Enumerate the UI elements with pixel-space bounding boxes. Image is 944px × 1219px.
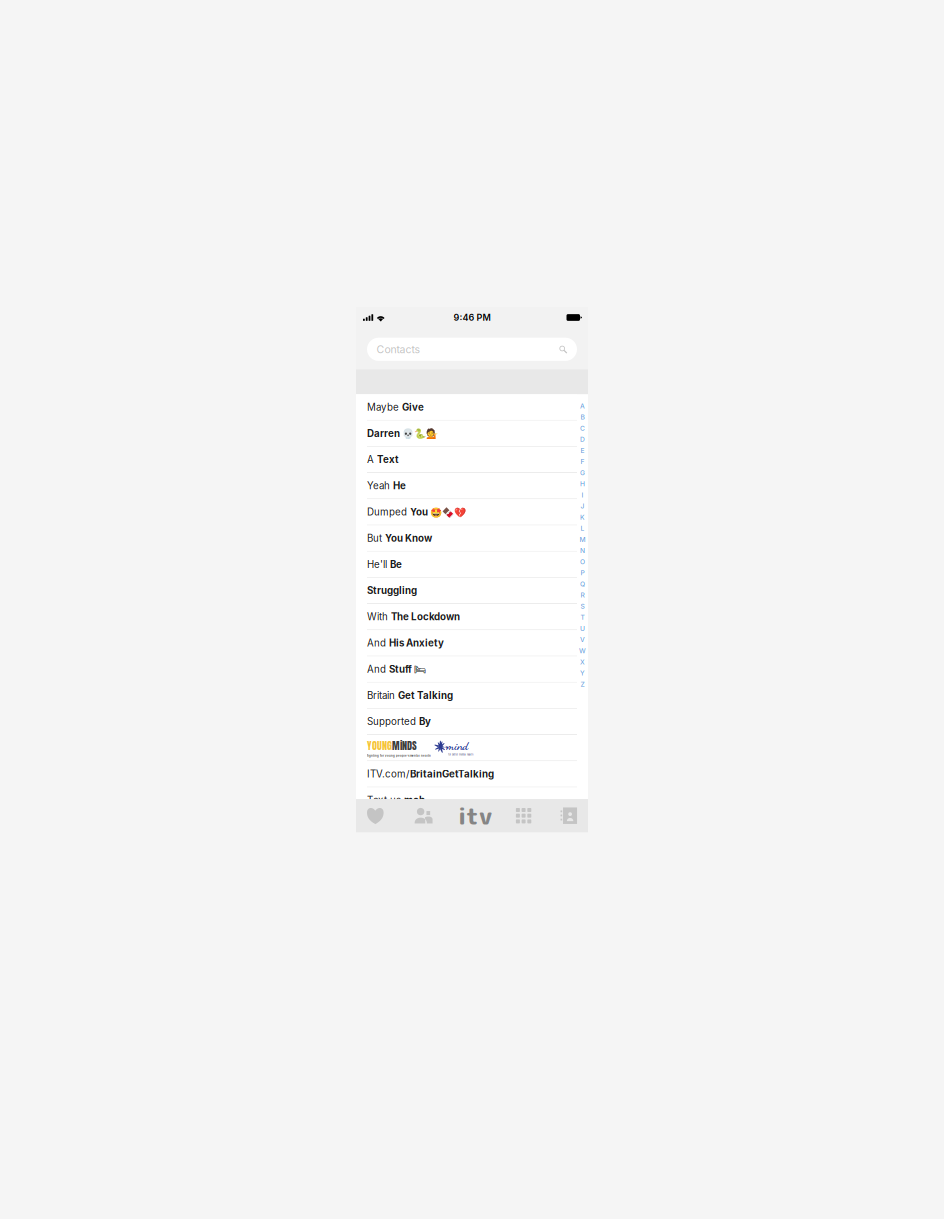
staticText: H [580, 480, 585, 488]
staticText: T [580, 613, 584, 621]
staticText: Text us [367, 794, 401, 806]
staticText: He'll [367, 558, 387, 570]
staticText: Text [377, 454, 399, 465]
staticText: mind [446, 739, 468, 753]
staticText: Struggling [367, 585, 417, 596]
button[interactable]: Yeah [356, 473, 577, 499]
staticText: Contacts [376, 343, 420, 356]
staticText: He [393, 480, 406, 492]
staticText: Z [580, 680, 584, 688]
staticText: And [367, 663, 386, 675]
staticText: V [580, 636, 585, 644]
staticText: YOUNG [367, 738, 392, 753]
button[interactable]: Darren 💀🐍💁 [356, 421, 577, 447]
staticText: Get Talking [398, 689, 453, 701]
staticText: N [580, 547, 585, 555]
staticText: P [580, 569, 584, 577]
staticText: But [367, 532, 382, 544]
staticText: K [580, 513, 585, 521]
staticText: fighting for young people's mental healt… [367, 754, 431, 757]
staticText: I [581, 491, 583, 499]
staticText: 9:46 PM [453, 312, 490, 323]
staticText: M [579, 535, 585, 544]
button[interactable]: Contacts [367, 338, 577, 361]
button[interactable]: YOUNG [356, 735, 577, 761]
staticText: And [367, 637, 386, 649]
button[interactable]: With [356, 604, 577, 630]
staticText: His Anxiety [389, 637, 444, 649]
button[interactable]: And [356, 656, 577, 683]
staticText: Supported [367, 716, 416, 727]
staticText: ITV.com/ [367, 768, 410, 780]
button[interactable]: Contacts [550, 799, 588, 832]
staticText: L [580, 524, 584, 532]
staticText: B [580, 413, 584, 421]
staticText: Maybe [367, 401, 399, 413]
button[interactable]: Supported [356, 709, 577, 735]
staticText: A [367, 454, 374, 465]
button[interactable]: Dumped [356, 499, 577, 525]
staticText: Dumped [367, 506, 407, 518]
staticText: S [580, 602, 584, 610]
staticText: MiNDS [392, 738, 417, 753]
staticText: You 🤩🍫💔 [410, 506, 466, 518]
staticText: X [580, 658, 585, 666]
staticText: R [580, 591, 584, 599]
staticText: O [580, 558, 585, 566]
staticText: BritainGetTalking [410, 768, 494, 780]
staticText: The Lockdown [391, 611, 460, 623]
staticText: Darren 💀🐍💁 [367, 427, 438, 439]
button[interactable]: Favourites [356, 799, 395, 832]
button[interactable]: ITV.com/ [356, 761, 577, 787]
staticText: Y [580, 669, 585, 677]
staticText: W [579, 647, 586, 655]
button[interactable]: He'll [356, 552, 577, 578]
staticText: Be [390, 558, 402, 570]
button[interactable]: But [356, 525, 577, 552]
staticText: Stuff 🛏 [389, 663, 426, 675]
button[interactable]: And [356, 630, 577, 656]
staticText: Q [580, 580, 585, 588]
staticText: itv [458, 799, 492, 832]
staticText: A [580, 402, 585, 410]
staticText: Yeah [367, 480, 390, 492]
button[interactable]: Recents [395, 799, 452, 832]
staticText: With [367, 611, 388, 623]
button[interactable]: A [356, 447, 577, 473]
button[interactable]: ITV [452, 799, 498, 832]
staticText: D [580, 435, 585, 443]
staticText: E [580, 446, 584, 455]
staticText: C [580, 424, 585, 432]
staticText: G [580, 469, 585, 477]
staticText: F [580, 458, 584, 466]
staticText: mob [404, 794, 425, 806]
staticText: By [419, 716, 431, 727]
staticText: for better mental health [448, 753, 473, 756]
staticText: Britain [367, 689, 395, 701]
button[interactable]: Alphabetical index [577, 394, 588, 799]
staticText: You Know [385, 532, 432, 544]
button[interactable]: Maybe [356, 394, 577, 421]
button[interactable]: Text us [356, 787, 577, 814]
staticText: U [580, 624, 585, 633]
button[interactable]: Struggling [356, 578, 577, 604]
staticText: Give [402, 401, 424, 413]
staticText: J [580, 502, 584, 510]
button[interactable]: Britain [356, 683, 577, 709]
button[interactable]: Keypad [498, 799, 550, 832]
